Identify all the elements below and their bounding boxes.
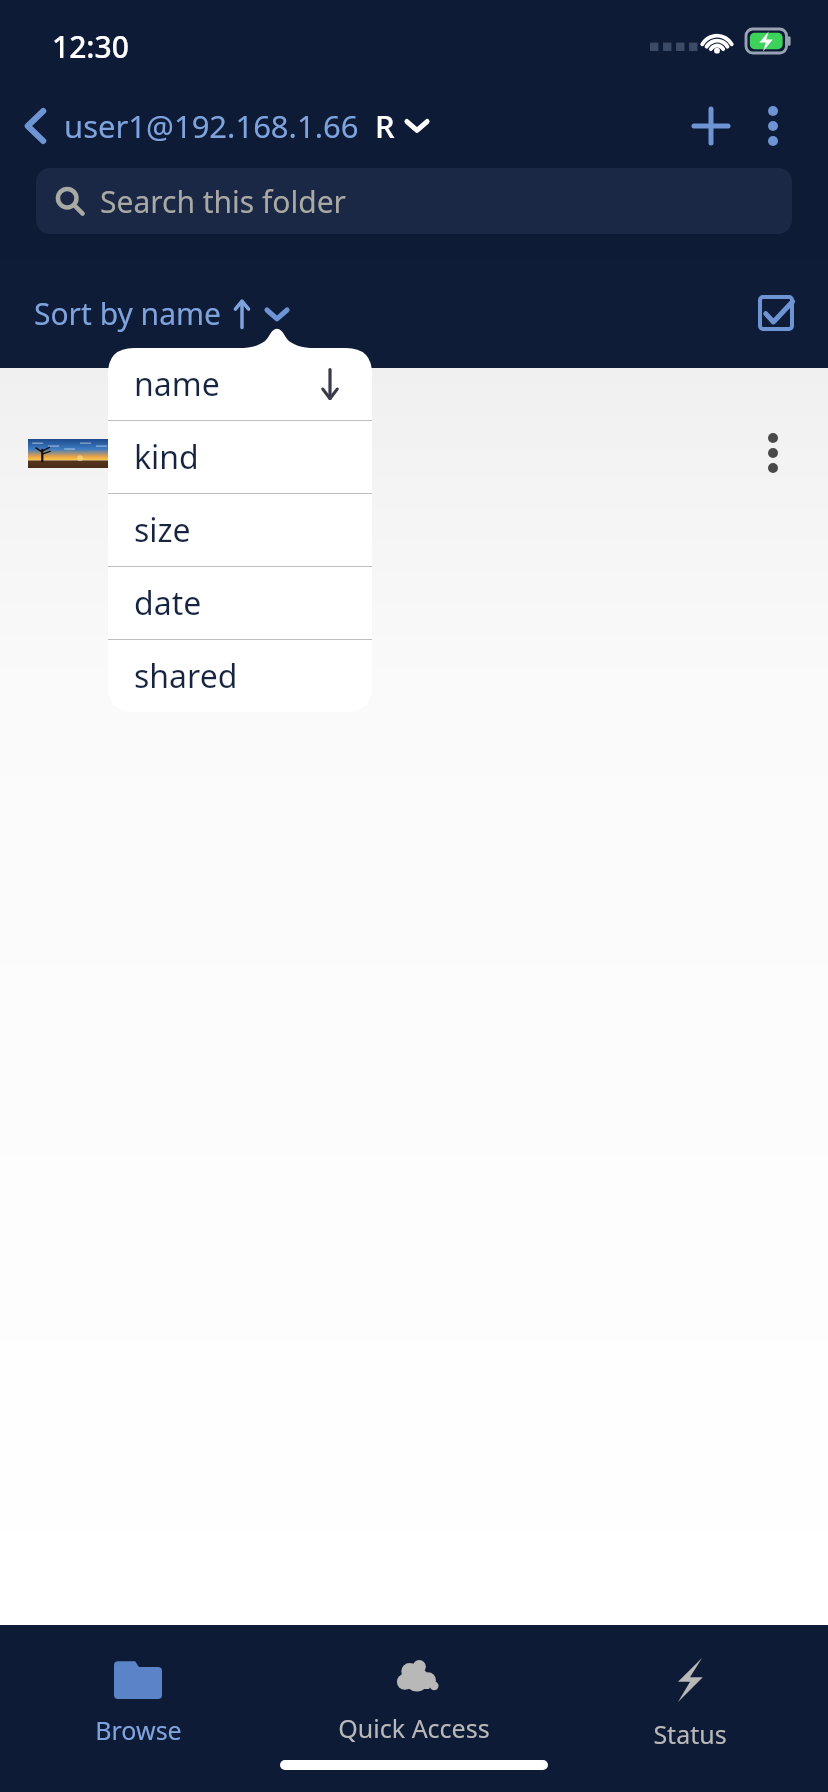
button[interactable]: Sort by name [24, 293, 289, 334]
button[interactable]: Select items [748, 285, 804, 341]
button[interactable]: More options [742, 95, 804, 157]
staticText: 17.05.2023 14:46 [138, 437, 360, 474]
button[interactable]: Back [12, 102, 60, 150]
staticText: Quick Access [338, 1711, 490, 1745]
button[interactable]: size [108, 494, 372, 566]
button[interactable]: user1@192.168.1.66 [64, 105, 429, 147]
staticText: Browse [95, 1713, 182, 1747]
staticText: Sunset.jpg [138, 390, 287, 431]
staticText: Total: 241 KB [138, 484, 302, 521]
staticText: Search this folder [100, 181, 346, 222]
staticText: name [134, 362, 220, 406]
button[interactable]: date [108, 567, 372, 639]
staticText: Status [653, 1717, 727, 1751]
button[interactable]: Quick Access [276, 1641, 552, 1792]
button[interactable]: shared [108, 640, 372, 712]
staticText: kind [134, 435, 199, 479]
button[interactable]: Status [552, 1641, 828, 1792]
button[interactable]: Item options [742, 422, 804, 484]
staticText: Sort by name [34, 293, 221, 334]
button[interactable]: kind [108, 421, 372, 493]
button[interactable]: Search this folder [36, 168, 792, 234]
button[interactable]: Add [680, 95, 742, 157]
button[interactable]: Sunset.jpg [0, 368, 828, 538]
staticText: user1@192.168.1.66 [64, 105, 359, 147]
staticText: date [134, 581, 202, 625]
staticText: shared [134, 654, 238, 698]
button[interactable]: name [108, 348, 372, 420]
button[interactable]: Browse [0, 1641, 276, 1792]
staticText: size [134, 508, 191, 552]
staticText: 12:30 [52, 26, 129, 67]
staticText: R [375, 105, 395, 147]
